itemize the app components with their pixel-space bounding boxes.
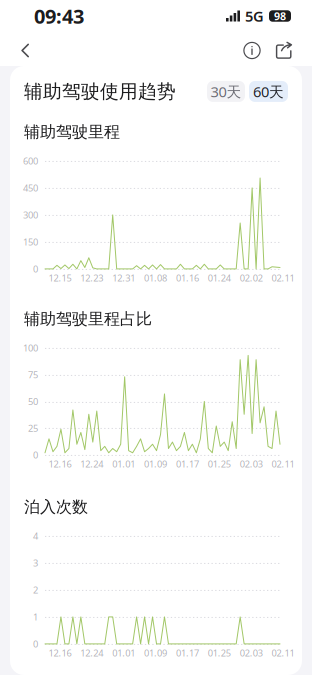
staticText: 5G [245, 6, 264, 26]
staticText: 60天 [253, 82, 284, 101]
staticText: 泊入次数 [24, 497, 88, 517]
staticText: 02.11 [271, 272, 294, 284]
staticText: 600 [23, 155, 38, 167]
staticText: 25 [28, 422, 38, 434]
staticText: 0 [33, 263, 38, 275]
staticText: 01.08 [144, 272, 167, 284]
button[interactable]: 30天 [207, 81, 245, 102]
button[interactable]: Share [268, 34, 300, 66]
staticText: 02.02 [240, 272, 263, 284]
staticText: 12.24 [80, 647, 103, 659]
staticText: 01.17 [176, 647, 199, 659]
staticText: 01.16 [176, 272, 199, 284]
staticText: 01.24 [208, 272, 231, 284]
staticText: 300 [23, 209, 38, 221]
staticText: 01.25 [208, 458, 231, 470]
staticText: 12.16 [48, 458, 71, 470]
staticText: 3 [33, 557, 38, 569]
staticText: 12.31 [112, 272, 135, 284]
staticText: 02.11 [271, 647, 294, 659]
staticText: 辅助驾驶里程占比 [24, 309, 152, 329]
staticText: 12.15 [48, 272, 71, 284]
staticText: 辅助驾驶使用趋势 [24, 80, 176, 103]
staticText: 50 [28, 395, 38, 408]
button[interactable]: Info [236, 34, 268, 66]
staticText: 1 [33, 611, 38, 623]
staticText: 450 [23, 182, 38, 194]
staticText: 01.01 [112, 458, 135, 470]
button[interactable]: Back [8, 34, 42, 66]
staticText: 100 [23, 342, 38, 354]
staticText: 98 [274, 9, 286, 23]
button[interactable]: 60天 [249, 81, 288, 102]
staticText: 01.25 [208, 647, 231, 659]
staticText: 12.23 [80, 272, 103, 284]
staticText: 2 [33, 584, 38, 596]
staticText: 0 [33, 449, 38, 461]
staticText: 01.09 [144, 458, 167, 470]
staticText: 0 [33, 638, 38, 650]
staticText: 01.01 [112, 647, 135, 659]
staticText: 12.24 [80, 458, 103, 470]
staticText: 02.11 [271, 458, 294, 470]
staticText: 辅助驾驶里程 [24, 122, 120, 142]
staticText: 30天 [210, 82, 241, 101]
staticText: 4 [33, 530, 38, 542]
staticText: 150 [23, 236, 38, 248]
staticText: 01.17 [176, 458, 199, 470]
staticText: 09:43 [34, 3, 84, 29]
staticText: 75 [28, 368, 38, 381]
staticText: 01.09 [144, 647, 167, 659]
staticText: 02.03 [240, 647, 263, 659]
staticText: 12.16 [48, 647, 71, 659]
staticText: 02.03 [240, 458, 263, 470]
